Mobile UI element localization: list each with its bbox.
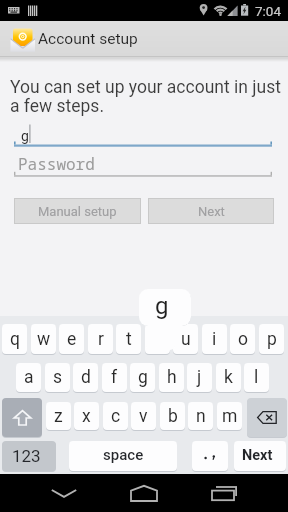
staticText: l	[254, 367, 259, 388]
button[interactable]: u	[173, 324, 198, 354]
button[interactable]	[247, 398, 287, 437]
staticText: b	[168, 406, 178, 427]
button[interactable]: Manual setup	[14, 198, 141, 224]
button[interactable]: n	[188, 402, 213, 430]
staticText: Account setup	[38, 30, 138, 48]
button[interactable]: z	[46, 402, 71, 430]
button[interactable]: f	[102, 363, 127, 392]
staticText: m	[222, 406, 238, 427]
button[interactable]: d	[73, 363, 98, 392]
button[interactable]: j	[187, 363, 212, 392]
button[interactable]: g	[130, 363, 155, 392]
button[interactable]	[2, 398, 42, 437]
button[interactable]: c	[103, 402, 128, 430]
staticText: g	[138, 367, 148, 388]
button[interactable]: q	[2, 324, 27, 354]
button[interactable]: i	[202, 324, 227, 354]
staticText: 123	[12, 446, 41, 466]
staticText: f	[111, 367, 118, 388]
staticText: k	[224, 367, 233, 388]
staticText: p	[267, 329, 277, 350]
button[interactable]: 123	[2, 441, 56, 471]
staticText: Next	[242, 447, 273, 464]
button[interactable]	[192, 441, 228, 471]
staticText: c	[111, 406, 121, 427]
staticText: j	[197, 367, 202, 388]
button[interactable]: a	[16, 363, 41, 392]
button[interactable]: v	[131, 402, 156, 430]
button[interactable]: Next	[148, 198, 274, 224]
staticText: n	[196, 406, 206, 427]
button[interactable]: o	[230, 324, 255, 354]
button[interactable]: p	[259, 324, 284, 354]
staticText: 7:04	[255, 3, 282, 19]
button[interactable]: y	[145, 324, 170, 354]
staticText: u	[181, 329, 191, 350]
staticText: o	[238, 329, 248, 350]
staticText: w	[37, 329, 51, 350]
button[interactable]	[120, 474, 168, 512]
staticText: h	[167, 367, 177, 388]
button[interactable]	[40, 474, 88, 512]
staticText: i	[212, 329, 217, 350]
button[interactable]: g	[14, 120, 272, 144]
button[interactable]: r	[88, 324, 113, 354]
button[interactable]: w	[31, 324, 56, 354]
staticText: x	[82, 406, 91, 427]
button[interactable]: Account setup	[38, 21, 238, 56]
button[interactable]: Password	[14, 151, 272, 177]
staticText: You can set up your account in just a fe…	[10, 77, 281, 117]
button[interactable]: k	[216, 363, 241, 392]
staticText: z	[54, 406, 63, 427]
button[interactable]: t	[116, 324, 141, 354]
staticText: r	[98, 329, 104, 350]
staticText: v	[139, 406, 148, 427]
button[interactable]: b	[160, 402, 185, 430]
staticText: space	[103, 446, 144, 464]
button[interactable]: h	[159, 363, 184, 392]
button[interactable]: e	[59, 324, 84, 354]
staticText: a	[24, 367, 34, 388]
button[interactable]: Next	[234, 441, 286, 471]
staticText: Next	[198, 204, 225, 219]
button[interactable]: l	[244, 363, 269, 392]
button[interactable]: s	[45, 363, 70, 392]
button[interactable]: x	[74, 402, 99, 430]
button[interactable]	[200, 474, 248, 512]
staticText: e	[67, 329, 77, 350]
staticText: q	[10, 329, 20, 350]
staticText: Manual setup	[38, 204, 117, 219]
staticText: g	[21, 128, 29, 144]
staticText: t	[126, 329, 132, 350]
button[interactable]: m	[217, 402, 242, 430]
staticText: s	[53, 367, 63, 388]
staticText: Password	[18, 153, 95, 175]
staticText: g	[155, 292, 169, 320]
button[interactable]: space	[69, 441, 177, 471]
staticText: d	[81, 367, 91, 388]
